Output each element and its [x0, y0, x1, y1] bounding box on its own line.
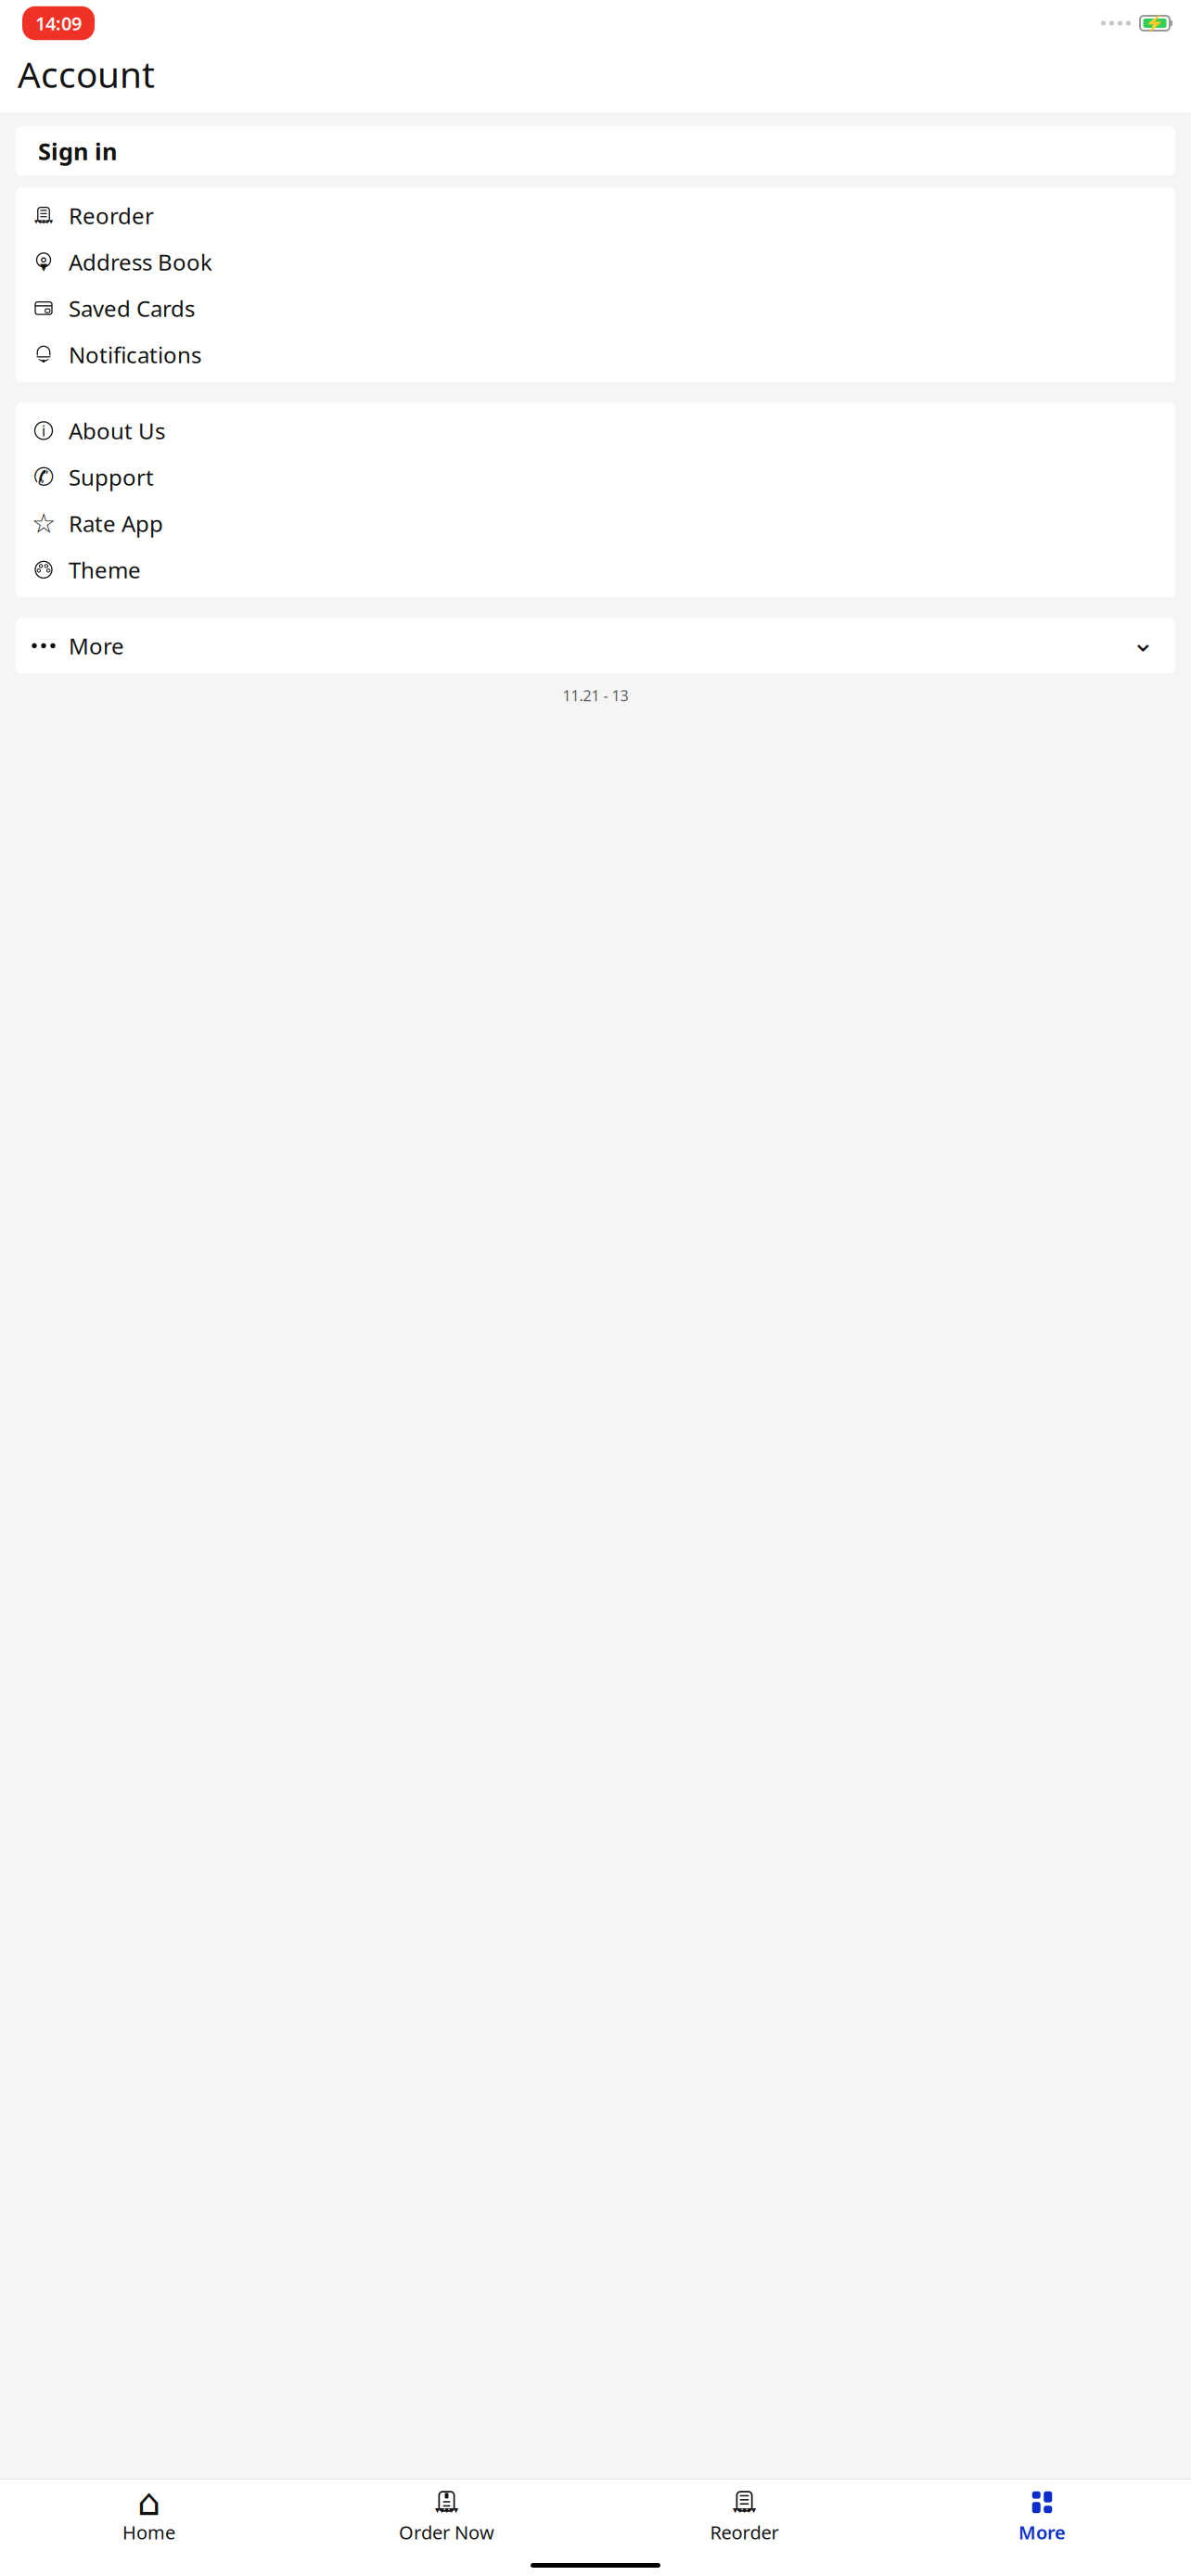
staticText: i	[42, 421, 45, 440]
staticText: ⚡	[1145, 14, 1165, 32]
staticText: ▼	[38, 219, 42, 224]
button[interactable]: ▼	[298, 2479, 595, 2544]
staticText: Support	[69, 462, 154, 492]
staticText: ▼	[40, 261, 47, 273]
staticText: ⌄	[1132, 627, 1155, 657]
staticText: ▼	[733, 2507, 737, 2514]
button[interactable]: ▼	[595, 2479, 893, 2544]
staticText: Address Book	[69, 247, 212, 277]
button[interactable]: i	[16, 407, 1175, 454]
button[interactable]: More	[893, 2479, 1191, 2544]
button[interactable]: ☆	[16, 500, 1175, 546]
staticText: About Us	[69, 416, 165, 445]
staticText: ▼	[751, 2507, 756, 2514]
staticText: ▼	[747, 2507, 751, 2514]
staticText: ▼	[45, 219, 49, 224]
staticText: ▼	[42, 219, 45, 224]
staticText: More	[1018, 2520, 1066, 2544]
button[interactable]: ▼	[16, 192, 1175, 239]
button[interactable]: Theme	[16, 546, 1175, 593]
staticText: Reorder	[69, 201, 154, 230]
staticText: ▼	[742, 2507, 747, 2514]
staticText: Account	[18, 50, 155, 98]
staticText: Notifications	[69, 340, 201, 369]
staticText: Rate App	[69, 509, 163, 538]
staticText: 14:09	[35, 11, 82, 36]
staticText: ☆	[32, 508, 56, 539]
staticText: Reorder	[710, 2520, 779, 2544]
staticText: Sign in	[38, 135, 117, 167]
button[interactable]: Saved Cards	[16, 285, 1175, 331]
staticText: Theme	[69, 555, 141, 584]
staticText: ⌂	[137, 2481, 160, 2523]
staticText: ▼	[435, 2507, 440, 2514]
staticText: ▼	[49, 219, 53, 224]
button[interactable]: Sign in	[16, 126, 1175, 176]
staticText: ▼	[444, 2507, 449, 2514]
button[interactable]: More	[16, 622, 1175, 669]
staticText: Home	[122, 2520, 175, 2544]
button[interactable]: Notifications	[16, 331, 1175, 378]
staticText: Saved Cards	[69, 293, 195, 323]
staticText: ▼	[34, 219, 38, 224]
staticText: ✆	[33, 463, 54, 491]
staticText: ▼	[440, 2507, 444, 2514]
staticText: ▼	[454, 2507, 458, 2514]
staticText: 11.21 - 13	[563, 686, 628, 705]
staticText: ▼	[449, 2507, 454, 2514]
staticText: More	[69, 631, 124, 661]
button[interactable]: ⌂	[0, 2479, 298, 2544]
button[interactable]: ✆	[16, 454, 1175, 500]
button[interactable]: ▼	[16, 239, 1175, 285]
staticText: ▼	[737, 2507, 742, 2514]
staticText: Order Now	[399, 2520, 494, 2544]
